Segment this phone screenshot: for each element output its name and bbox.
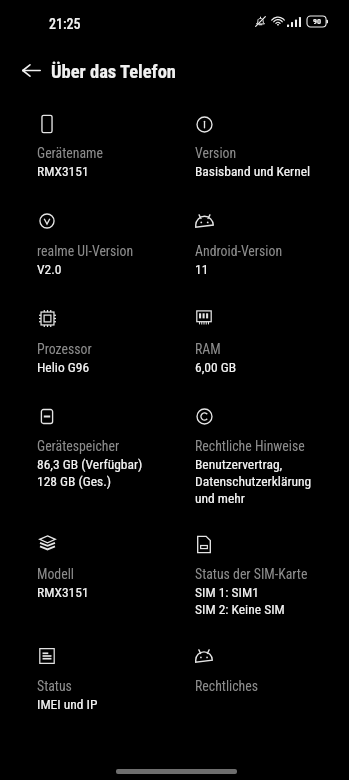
- button[interactable]: Rechtliche Hinweise: [189, 407, 339, 506]
- button[interactable]: realme UI-Version: [31, 212, 181, 277]
- staticText: Gerätespeicher: [37, 438, 120, 454]
- button[interactable]: Status: [31, 647, 181, 712]
- button[interactable]: Gerätespeicher: [31, 407, 181, 489]
- button[interactable]: Version: [189, 114, 339, 179]
- staticText: IMEI und IP: [37, 696, 98, 712]
- button[interactable]: Prozessor: [31, 310, 181, 375]
- staticText: Benutzervertrag, Datenschutzerklärung un…: [195, 456, 312, 506]
- staticText: 21:25: [49, 16, 81, 32]
- staticText: Über das Telefon: [51, 61, 176, 83]
- staticText: Android-Version: [195, 243, 283, 259]
- staticText: Modell: [37, 566, 74, 582]
- button[interactable]: Status der SIM-Karte: [189, 535, 339, 617]
- staticText: Rechtliche Hinweise: [195, 438, 305, 454]
- button[interactable]: Android-Version: [189, 212, 339, 277]
- staticText: Helio G96: [37, 359, 90, 375]
- staticText: 11: [195, 261, 209, 277]
- staticText: Basisband und Kernel: [195, 163, 311, 179]
- staticText: Gerätename: [37, 145, 103, 161]
- staticText: RMX3151: [37, 584, 89, 600]
- staticText: 6,00 GB: [195, 359, 237, 375]
- button[interactable]: Back: [15, 54, 47, 86]
- staticText: RMX3151: [37, 163, 89, 179]
- staticText: Version: [195, 145, 237, 161]
- staticText: RAM: [195, 341, 221, 357]
- staticText: 86,3 GB (Verfügbar) 128 GB (Ges.): [37, 456, 143, 489]
- button[interactable]: Rechtliches: [189, 647, 339, 696]
- staticText: SIM 1: SIM1 SIM 2: Keine SIM: [195, 584, 285, 617]
- staticText: V2.0: [37, 261, 62, 277]
- button[interactable]: Modell: [31, 535, 181, 600]
- staticText: Rechtliches: [195, 678, 259, 694]
- staticText: 90: [313, 17, 322, 26]
- button[interactable]: Gerätename: [31, 114, 181, 179]
- staticText: Prozessor: [37, 341, 92, 357]
- button[interactable]: RAM: [189, 310, 339, 375]
- staticText: Status der SIM-Karte: [195, 566, 308, 582]
- staticText: Status: [37, 678, 72, 694]
- staticText: realme UI-Version: [37, 243, 134, 259]
